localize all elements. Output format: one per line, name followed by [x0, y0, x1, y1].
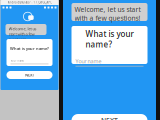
staticText: NEXT: [25, 72, 34, 78]
staticText: What is your name?: [85, 28, 133, 50]
staticText: Welcome, let us start with a few questio…: [74, 5, 140, 23]
staticText: Welcome, let us start with a few questio…: [8, 26, 36, 42]
staticText: What is your name?: [10, 46, 49, 51]
staticText: Your name: [10, 59, 24, 62]
staticText: Your name: [75, 58, 101, 65]
staticText: AndroidEmulator - 17_Q4GL_APL: [7, 1, 51, 4]
button[interactable]: NEXT: [71, 114, 147, 120]
staticText: NEXT: [101, 116, 118, 120]
button[interactable]: NEXT: [6, 71, 52, 79]
